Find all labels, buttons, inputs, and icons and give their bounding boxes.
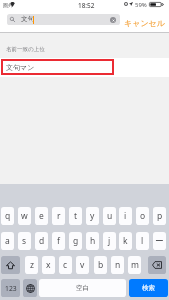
button[interactable]: d [35,232,48,250]
staticText: 18:52 [78,1,95,10]
button[interactable]: a [1,232,14,250]
button[interactable]: Clear text [110,17,116,23]
button[interactable]: e [35,207,48,225]
staticText: 文句 [21,15,34,23]
button[interactable]: Delete [148,256,166,274]
button[interactable]: Shift [1,256,20,274]
button[interactable]: 検索 [129,279,168,297]
button[interactable]: p [153,207,166,225]
staticText: k [123,235,128,247]
staticText: t [74,210,78,222]
staticText: q [5,210,11,222]
staticText: y [90,210,95,222]
staticText: j [108,235,111,247]
staticText: 検索 [142,284,155,292]
button[interactable]: z [25,256,38,274]
staticText: r [57,210,61,222]
staticText: キャンセル [124,18,165,28]
button[interactable]: 文句マン [0,58,169,77]
button[interactable]: i [119,207,132,225]
button[interactable]: o [136,207,149,225]
staticText: l [141,235,144,247]
staticText: f [57,235,60,247]
staticText: c [63,259,68,271]
button[interactable]: v [76,256,89,274]
button[interactable]: l [136,232,149,250]
staticText: s [22,235,27,247]
button[interactable]: u [103,207,116,225]
button[interactable]: x [42,256,55,274]
button[interactable]: 空白 [39,279,126,297]
button[interactable]: f [52,232,65,250]
staticText: i [124,210,127,222]
staticText: v [80,259,85,271]
button[interactable]: キャンセル [121,13,167,32]
button[interactable]: r [52,207,65,225]
staticText: x [46,259,51,271]
button[interactable]: n [111,256,124,274]
button[interactable]: b [94,256,107,274]
staticText: h [90,235,96,247]
staticText: 名前一致の上位 [6,46,45,53]
button[interactable]: s [18,232,31,250]
staticText: p [157,210,163,222]
button[interactable]: j [103,232,116,250]
button[interactable]: ー [153,232,166,250]
staticText: ー [155,236,164,247]
staticText: 圏外 [3,2,13,8]
staticText: e [39,210,44,222]
button[interactable]: w [18,207,31,225]
staticText: u [107,210,113,222]
button[interactable]: t [69,207,82,225]
button[interactable]: y [86,207,99,225]
staticText: d [39,235,45,247]
staticText: n [115,259,121,271]
staticText: 文句マン [6,63,35,72]
staticText: m [131,259,139,271]
button[interactable]: m [128,256,141,274]
button[interactable]: h [86,232,99,250]
button[interactable]: g [69,232,82,250]
staticText: g [73,235,79,247]
staticText: 59% [135,1,147,9]
staticText: o [140,210,146,222]
staticText: b [98,259,104,271]
button[interactable]: 文句 [7,14,120,25]
staticText: 空白 [76,284,89,292]
button[interactable]: k [119,232,132,250]
staticText: w [21,210,28,222]
button[interactable]: c [59,256,72,274]
staticText: a [5,235,10,247]
staticText: 123 [5,284,17,293]
button[interactable]: 123 [1,279,20,297]
button[interactable]: q [1,207,14,225]
button[interactable]: Switch keyboard [23,279,37,297]
staticText: z [30,259,34,271]
